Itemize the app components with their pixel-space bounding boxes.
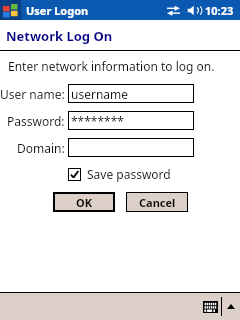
staticText: User name:	[0, 86, 65, 102]
button[interactable]: Save password	[68, 166, 171, 182]
staticText: Network Log On	[6, 27, 113, 45]
button[interactable]: Start	[0, 0, 21, 20]
staticText: Domain:	[17, 140, 65, 156]
staticText: 10:23	[205, 3, 234, 18]
staticText: Save password	[87, 166, 171, 182]
button[interactable]: Volume	[186, 0, 202, 20]
button[interactable]: Input panel options	[222, 293, 240, 320]
button[interactable]: ********	[68, 111, 194, 130]
staticText: ********	[71, 113, 124, 129]
staticText: Enter network information to log on.	[8, 58, 215, 74]
button[interactable]: Input panel	[199, 293, 221, 320]
button[interactable]: username	[68, 84, 194, 103]
staticText: Password:	[7, 113, 65, 129]
button[interactable]	[68, 138, 194, 157]
button[interactable]: Cancel	[126, 192, 188, 212]
staticText: Cancel	[139, 195, 176, 210]
staticText: username	[71, 86, 129, 102]
button[interactable]: Connectivity	[164, 0, 182, 20]
button[interactable]: OK	[53, 192, 115, 212]
staticText: OK	[76, 195, 93, 210]
staticText: User Logon	[26, 3, 89, 18]
